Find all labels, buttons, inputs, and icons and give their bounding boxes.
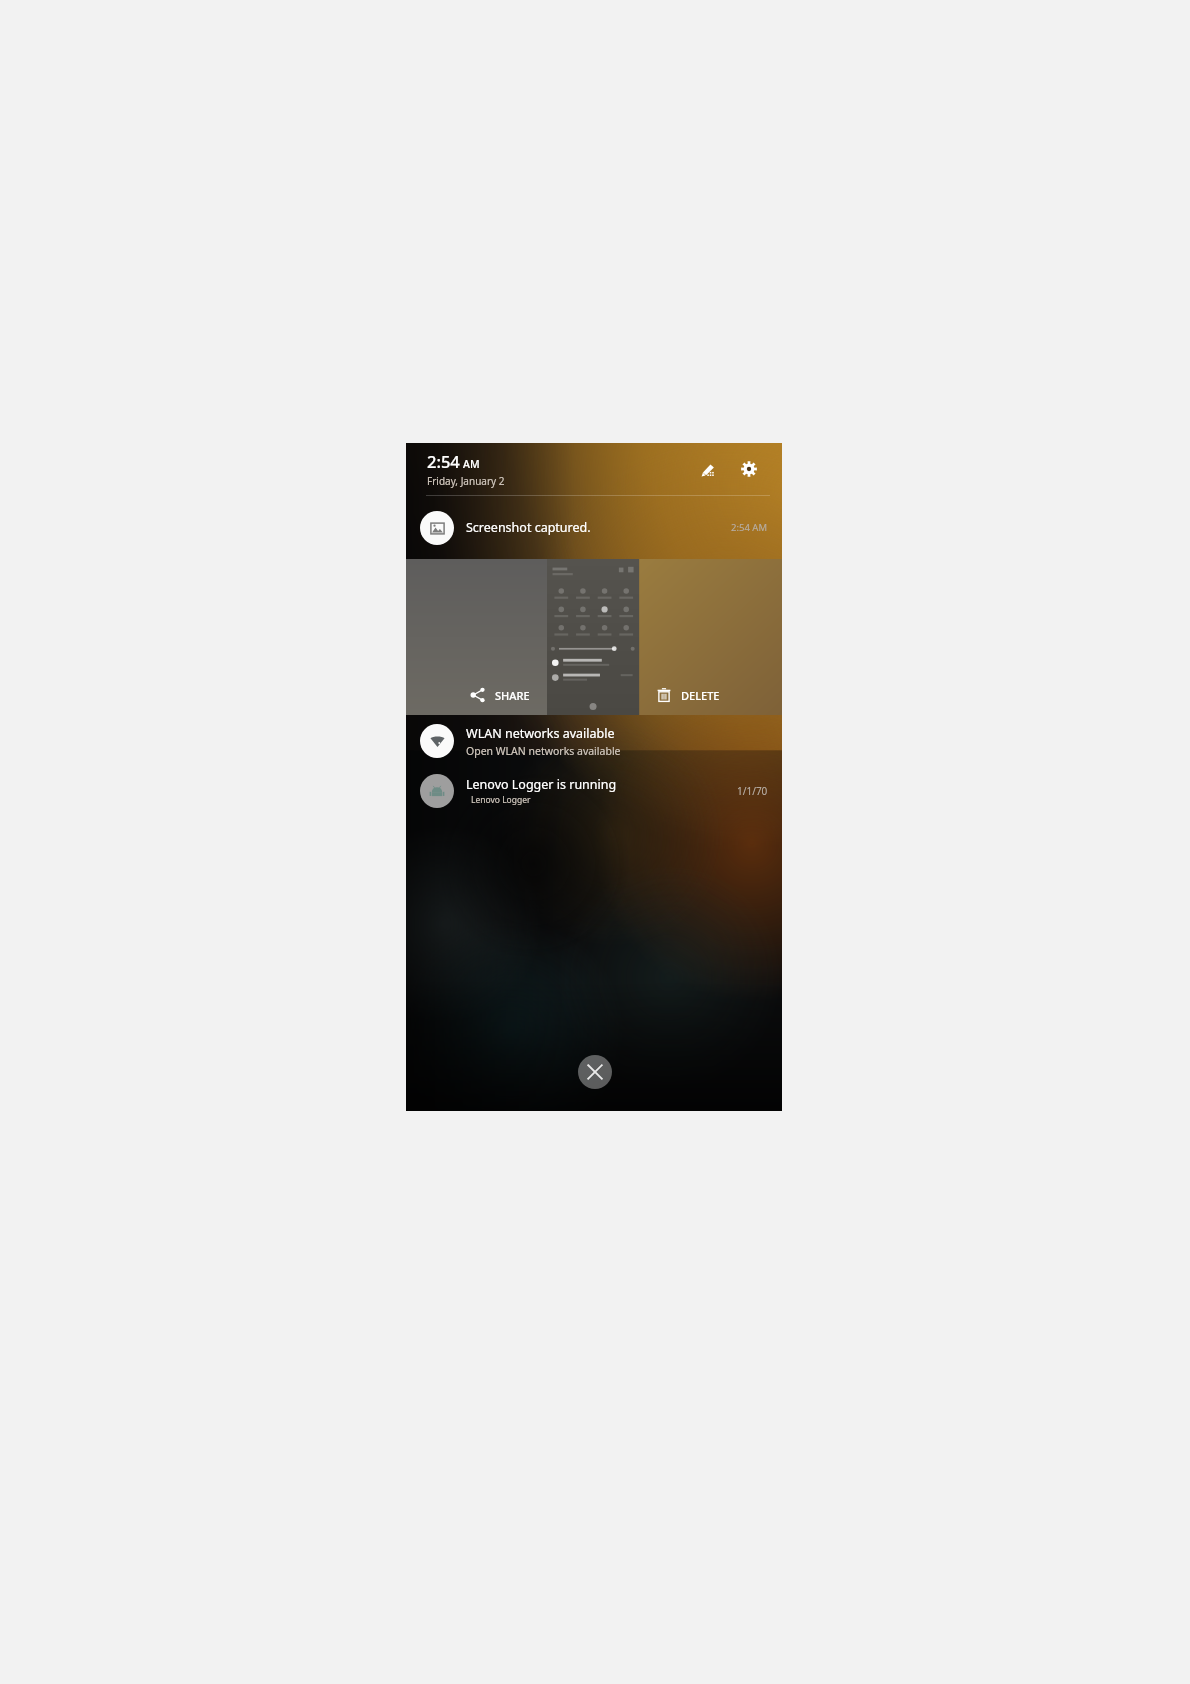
staticText: Lenovo Logger is running [466, 776, 617, 793]
button[interactable]: SHARE [406, 675, 594, 715]
staticText: WLAN networks available [466, 725, 615, 742]
staticText: 1/1/70 [737, 784, 768, 798]
button[interactable]: WLAN networks available [406, 715, 782, 767]
button[interactable]: Edit quick settings [693, 454, 723, 484]
staticText: 2:54 AM [731, 521, 768, 534]
staticText: Lenovo Logger [471, 794, 531, 806]
button[interactable]: Screenshot captured. [406, 496, 782, 559]
button[interactable]: Lenovo Logger is running [406, 767, 782, 815]
staticText: Open WLAN networks available [466, 744, 621, 758]
staticText: SHARE [495, 688, 530, 703]
button[interactable]: DELETE [594, 675, 782, 715]
staticText: AM [463, 457, 480, 471]
button[interactable]: Clear all notifications [578, 1055, 612, 1089]
button[interactable]: Settings [734, 454, 764, 484]
staticText: Friday, January 2 [427, 474, 505, 488]
staticText: Screenshot captured. [466, 519, 731, 536]
staticText: 2:54 [427, 450, 460, 472]
staticText: DELETE [681, 688, 720, 703]
